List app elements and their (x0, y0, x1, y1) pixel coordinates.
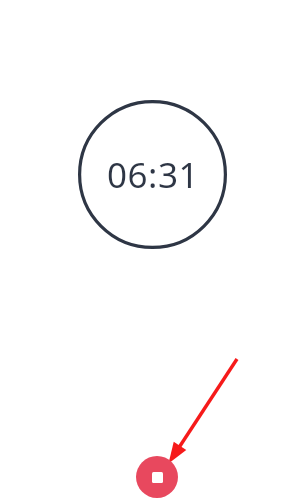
button[interactable]: 06:31 (78, 100, 227, 249)
button[interactable]: Stop (136, 456, 178, 498)
staticText: 06:31 (107, 151, 199, 199)
